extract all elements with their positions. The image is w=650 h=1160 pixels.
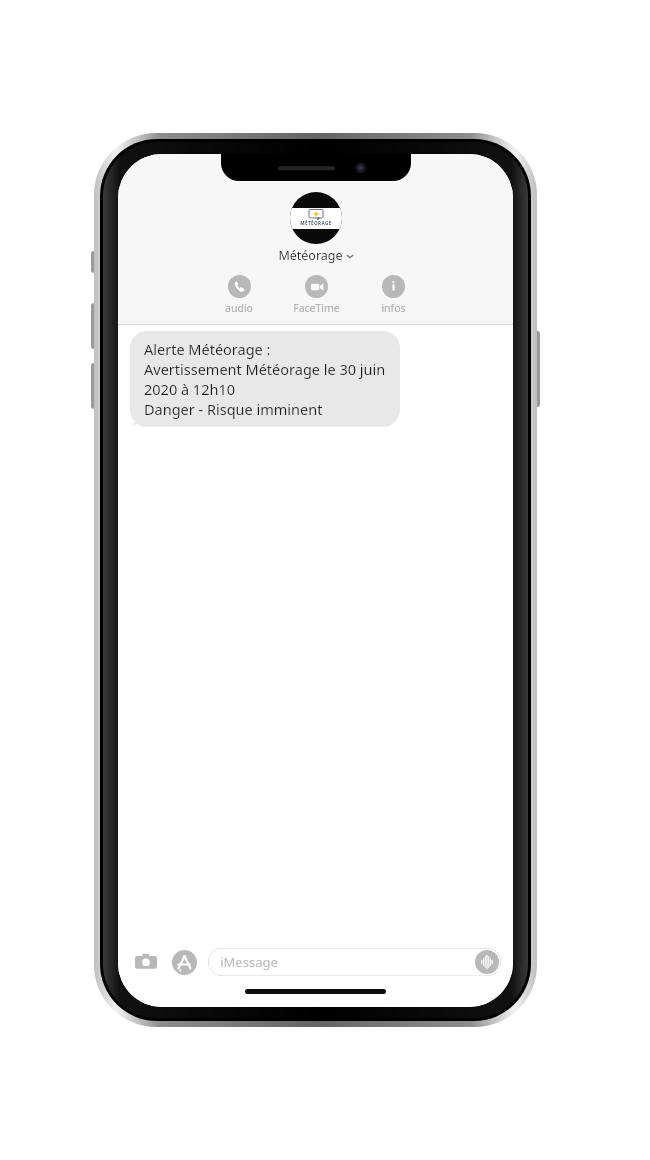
staticText: iMessage [220, 953, 278, 971]
staticText: 2020 à 12h10 [144, 379, 235, 399]
staticText: Avertissement Météorage le 30 juin [144, 359, 386, 379]
button[interactable]: iMessage [208, 948, 501, 976]
staticText: Danger - Risque imminent [144, 399, 323, 419]
button[interactable]: App Store [170, 948, 198, 976]
button[interactable]: MÉTÉORAGE [118, 192, 513, 264]
button[interactable]: Record audio message [475, 950, 499, 974]
staticText: audio [225, 301, 253, 315]
staticText: MÉTÉORAGE [300, 220, 332, 226]
staticText: Alerte Météorage : [144, 339, 271, 359]
button[interactable]: FaceTime [277, 273, 355, 317]
button[interactable]: audio [207, 273, 271, 317]
button[interactable]: Alerte Météorage : [130, 331, 400, 427]
staticText: FaceTime [293, 301, 340, 315]
button[interactable]: Camera [132, 948, 160, 976]
button[interactable]: infos [361, 273, 425, 317]
staticText: infos [381, 301, 406, 315]
staticText: Météorage [278, 247, 343, 264]
